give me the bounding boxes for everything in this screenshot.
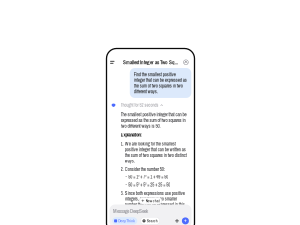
staticText: We are looking for the smallest positive…: [125, 141, 187, 164]
button[interactable]: DeepThink: [112, 217, 137, 224]
staticText: Search: [147, 218, 158, 223]
button[interactable]: Search: [140, 217, 160, 224]
button[interactable]: Open menu: [110, 57, 120, 67]
staticText: Thought for 52 seconds: [120, 103, 158, 108]
staticText: The smallest positive integer that can b…: [120, 112, 186, 129]
button[interactable]: Add attachment: [174, 219, 180, 223]
button[interactable]: Account: [181, 57, 191, 67]
staticText: Explanation:: [120, 132, 141, 138]
button[interactable]: New chat: [139, 197, 162, 204]
staticText: Find the smallest positive integer that …: [134, 72, 187, 94]
staticText: 1.: [120, 141, 123, 147]
staticText: New chat: [146, 198, 160, 203]
staticText: 50 = 5² + 5² = 25 + 25 = 50: [128, 182, 170, 188]
button[interactable]: Send message: [182, 217, 189, 224]
staticText: DeepThink: [118, 218, 135, 223]
staticText: 2.: [120, 166, 123, 172]
staticText: Smallest Integer as Two Sq...: [123, 59, 178, 65]
staticText: Consider the number 50:: [125, 166, 165, 172]
staticText: Since both expressions use positive inte…: [125, 190, 185, 207]
staticText: 3.: [120, 190, 123, 196]
staticText: Message DeepSeek: [113, 208, 148, 214]
staticText: 50 = 1² + 7² = 1 + 49 = 50: [128, 174, 168, 180]
